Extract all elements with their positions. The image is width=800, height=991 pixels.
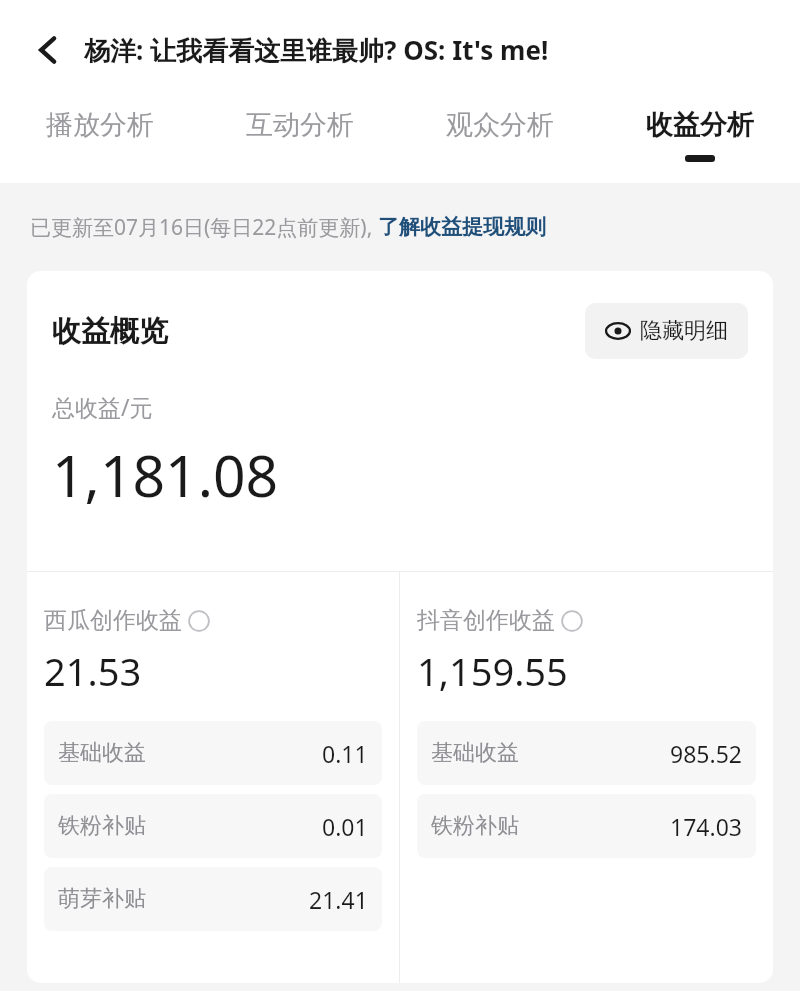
staticText: 21.53 [44, 645, 142, 697]
button[interactable]: 基础收益 [417, 721, 756, 785]
staticText: 收益概览 [52, 313, 168, 350]
staticText: 抖音创作收益 [417, 606, 555, 635]
staticText: 铁粉补贴 [431, 812, 519, 840]
staticText: 杨洋: 让我看看这里谁最帅? OS: It's me! [84, 32, 549, 68]
staticText: 基础收益 [431, 739, 519, 767]
button[interactable]: 观众分析 [400, 100, 600, 155]
staticText: 隐藏明细 [640, 317, 728, 345]
button[interactable]: 播放分析 [0, 100, 200, 155]
staticText: 已更新至07月16日(每日22点前更新), [30, 213, 378, 242]
staticText: 播放分析 [46, 108, 154, 142]
button[interactable]: 铁粉补贴 [44, 794, 382, 858]
staticText: 总收益/元 [52, 391, 153, 422]
staticText: 985.52 [670, 738, 742, 769]
button[interactable]: 收益分析 [600, 100, 800, 162]
button[interactable]: 隐藏明细 [585, 303, 748, 359]
button[interactable]: Back [22, 24, 74, 76]
button[interactable]: 了解收益提现规则 [378, 214, 546, 240]
staticText: 1,181.08 [52, 436, 279, 514]
button[interactable]: 铁粉补贴 [417, 794, 756, 858]
button[interactable]: 萌芽补贴 [44, 867, 382, 931]
button[interactable]: 互动分析 [200, 100, 400, 155]
staticText: 萌芽补贴 [58, 885, 146, 913]
staticText: 基础收益 [58, 739, 146, 767]
staticText: 了解收益提现规则 [378, 214, 546, 240]
staticText: 174.03 [670, 811, 742, 842]
staticText: 互动分析 [246, 108, 354, 142]
staticText: 收益分析 [646, 108, 754, 142]
staticText: 西瓜创作收益 [44, 606, 182, 635]
staticText: 0.11 [322, 738, 368, 769]
button[interactable]: 基础收益 [44, 721, 382, 785]
staticText: 21.41 [309, 884, 368, 915]
staticText: 铁粉补贴 [58, 812, 146, 840]
staticText: 1,159.55 [417, 645, 568, 697]
staticText: 0.01 [322, 811, 368, 842]
staticText: 观众分析 [446, 108, 554, 142]
